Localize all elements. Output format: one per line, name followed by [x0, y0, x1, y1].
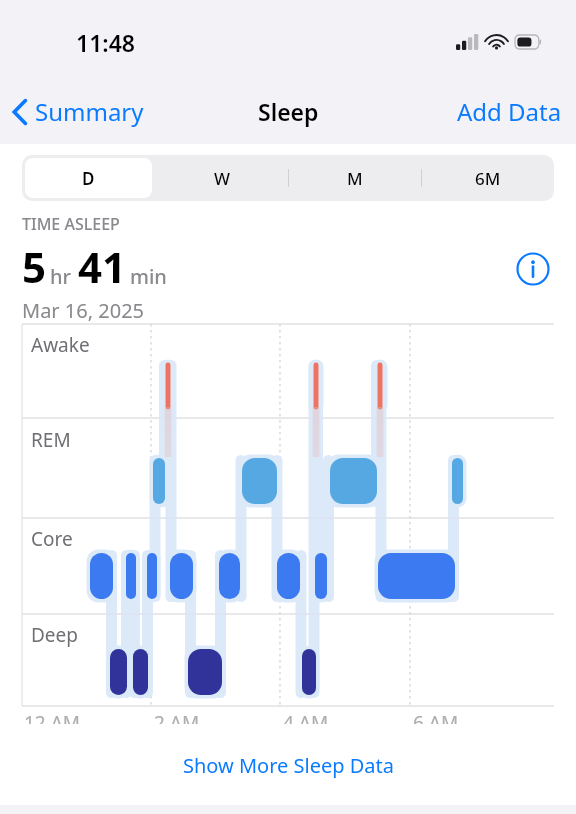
staticText: Add Data: [457, 95, 562, 128]
staticText: 41: [78, 238, 127, 295]
staticText: REM: [31, 427, 71, 453]
button[interactable]: D: [22, 155, 155, 201]
staticText: min: [130, 263, 167, 290]
staticText: D: [82, 167, 95, 190]
staticText: Show More Sleep Data: [183, 752, 394, 779]
staticText: W: [214, 167, 230, 190]
staticText: TIME ASLEEP: [22, 213, 120, 235]
button[interactable]: M: [288, 155, 421, 201]
staticText: Core: [31, 526, 73, 552]
staticText: 5: [22, 238, 47, 295]
staticText: 6M: [475, 167, 501, 190]
button[interactable]: W: [155, 155, 288, 201]
staticText: 4 AM: [283, 710, 329, 724]
staticText: Awake: [31, 332, 90, 358]
button[interactable]: 6M: [421, 155, 554, 201]
staticText: Deep: [31, 622, 78, 648]
staticText: 2 AM: [154, 710, 200, 724]
staticText: Sleep: [258, 96, 319, 127]
staticText: 12 AM: [24, 710, 81, 724]
button[interactable]: Summary: [0, 89, 154, 134]
button[interactable]: Show More Sleep Data: [0, 746, 576, 785]
staticText: hr: [50, 263, 71, 290]
staticText: 11:48: [76, 27, 135, 58]
staticText: 6 AM: [413, 710, 459, 724]
button[interactable]: About sleep data: [516, 252, 550, 286]
button[interactable]: Add Data: [443, 89, 576, 134]
staticText: M: [347, 167, 363, 190]
staticText: Mar 16, 2025: [22, 297, 145, 324]
staticText: Summary: [35, 95, 144, 128]
